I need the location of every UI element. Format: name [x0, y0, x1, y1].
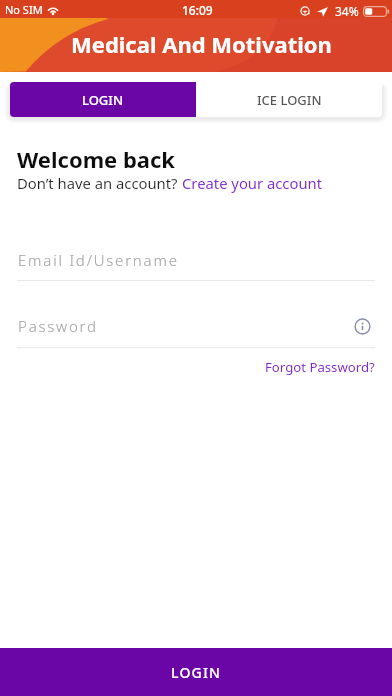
button[interactable]: LOGIN — [0, 648, 392, 696]
staticText: Don’t have an account? — [17, 173, 182, 193]
button[interactable]: LOGIN — [10, 82, 196, 117]
button[interactable]: Create your account — [182, 173, 323, 193]
staticText: 34% — [335, 3, 359, 19]
staticText: Email Id/Username — [18, 250, 179, 270]
staticText: Password — [18, 316, 98, 336]
button[interactable]: ICE LOGIN — [196, 82, 382, 117]
staticText: No SIM — [5, 2, 43, 17]
button[interactable]: Forgot Password? — [265, 358, 375, 376]
staticText: LOGIN — [171, 663, 222, 682]
staticText: ICE LOGIN — [257, 91, 322, 109]
staticText: Medical And Motivation — [71, 29, 332, 59]
staticText: Welcome back — [17, 144, 176, 174]
staticText: 16:09 — [182, 2, 213, 18]
staticText: LOGIN — [82, 91, 124, 109]
button[interactable]: Password — [17, 314, 375, 348]
other: Password information — [354, 318, 371, 335]
button[interactable]: Email Id/Username — [17, 247, 375, 281]
